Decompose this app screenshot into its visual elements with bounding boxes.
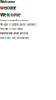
staticText: Featured and latest articles (0, 32, 28, 35)
staticText: Welcome (0, 6, 16, 10)
staticText: Welcome (0, 12, 21, 18)
staticText: Send files to your devices (0, 28, 23, 30)
staticText: Welcome (0, 0, 15, 4)
staticText: Secure all of your personal data (0, 37, 29, 39)
staticText: Find apps to optimize all your experienc… (0, 23, 36, 26)
staticText: Find apps to optimize all your experienc… (0, 20, 29, 21)
